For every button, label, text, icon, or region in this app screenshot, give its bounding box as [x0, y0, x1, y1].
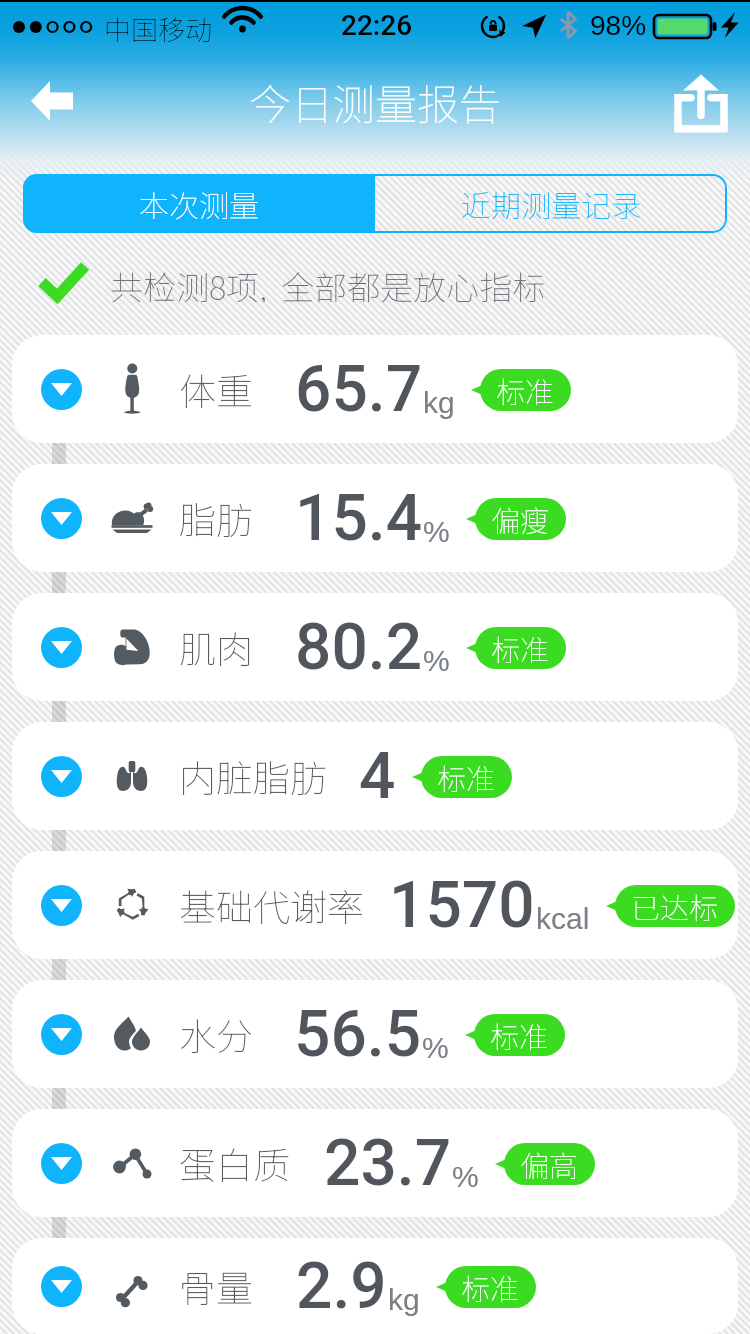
button[interactable]: 蛋白质 — [12, 1109, 738, 1217]
button[interactable]: Back — [21, 70, 83, 132]
button[interactable]: Share — [668, 68, 734, 134]
staticText: 中国移动 — [104, 9, 212, 48]
staticText: 水分 — [179, 1007, 253, 1061]
button[interactable]: 水分 — [12, 980, 738, 1088]
staticText: 23.7 — [324, 1126, 451, 1201]
staticText: 共检测8项, 全部都是放心指标 — [110, 262, 546, 302]
button[interactable]: 内脏脂肪 — [12, 722, 738, 830]
staticText: 56.5 — [294, 997, 421, 1072]
staticText: 80.2 — [295, 610, 422, 685]
staticText: 本次测量 — [139, 182, 259, 225]
button[interactable]: 近期测量记录 — [375, 174, 727, 233]
staticText: 骨量 — [179, 1259, 253, 1313]
staticText: 98% — [590, 10, 647, 41]
staticText: 22:26 — [341, 9, 413, 42]
staticText: 已达标 — [631, 885, 719, 927]
staticText: % — [423, 644, 450, 678]
button[interactable]: 肌肉 — [12, 593, 738, 701]
staticText: 肌肉 — [179, 620, 253, 674]
button[interactable]: 骨量 — [12, 1238, 738, 1334]
staticText: 近期测量记录 — [461, 182, 641, 225]
staticText: 标准 — [491, 627, 550, 669]
staticText: 1570 — [389, 868, 535, 943]
staticText: 今日测量报告 — [249, 71, 502, 132]
staticText: 标准 — [496, 369, 555, 411]
button[interactable]: 本次测量 — [23, 174, 375, 233]
staticText: 脂肪 — [179, 491, 253, 545]
staticText: 标准 — [437, 756, 496, 798]
staticText: 偏高 — [520, 1143, 579, 1185]
staticText: 15.4 — [295, 481, 422, 556]
button[interactable]: 脂肪 — [12, 464, 738, 572]
staticText: kg — [388, 1283, 420, 1317]
staticText: % — [422, 1031, 449, 1065]
staticText: 体重 — [179, 362, 253, 416]
button[interactable]: 体重 — [12, 335, 738, 443]
staticText: kcal — [536, 902, 590, 936]
staticText: 内脏脂肪 — [179, 749, 327, 803]
staticText: 标准 — [490, 1014, 549, 1056]
staticText: kg — [423, 386, 455, 420]
staticText: 2.9 — [296, 1249, 387, 1324]
staticText: 蛋白质 — [179, 1136, 290, 1190]
staticText: 4 — [359, 739, 396, 814]
staticText: 65.7 — [295, 352, 422, 427]
staticText: 基础代谢率 — [179, 878, 364, 932]
staticText: 标准 — [461, 1266, 520, 1308]
staticText: % — [452, 1160, 479, 1194]
button[interactable]: 基础代谢率 — [12, 851, 738, 959]
staticText: % — [423, 515, 450, 549]
staticText: 偏瘦 — [491, 498, 550, 540]
